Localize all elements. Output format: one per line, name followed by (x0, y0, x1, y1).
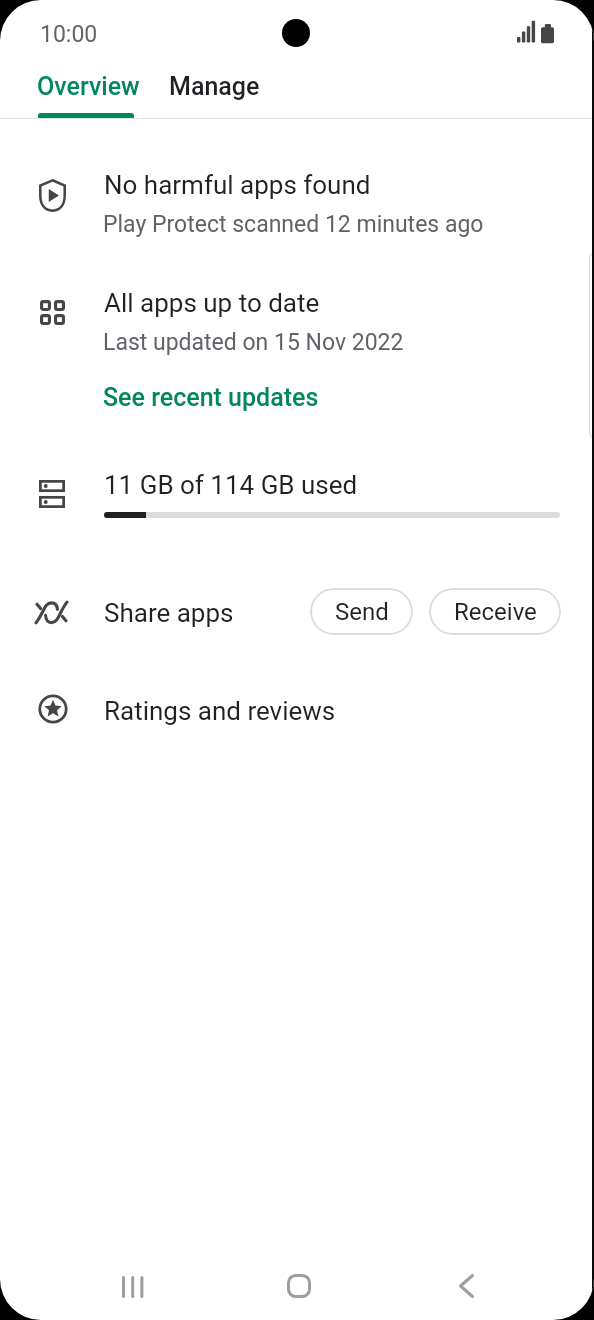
button[interactable]: Ratings and reviews (0, 680, 594, 740)
staticText: Last updated on 15 Nov 2022 (103, 329, 404, 356)
button[interactable]: Manage (159, 60, 269, 112)
staticText: Share apps (104, 598, 234, 628)
other: Play Protect (39, 179, 66, 212)
other: Share apps (35, 601, 68, 624)
staticText: 11 GB of 114 GB used (104, 470, 358, 500)
staticText: 10:00 (40, 21, 98, 48)
button[interactable]: Recent apps (93, 1253, 173, 1320)
staticText: No harmful apps found (104, 170, 371, 200)
button[interactable]: 11 GB of 114 GB used (0, 458, 594, 530)
button[interactable]: Home (259, 1253, 339, 1320)
staticText: Overview (37, 72, 140, 101)
button[interactable]: Send (310, 588, 413, 635)
button[interactable]: Back (426, 1253, 506, 1320)
button[interactable]: Receive (429, 588, 561, 635)
button[interactable]: No harmful apps found (0, 160, 594, 240)
other: Storage (39, 480, 65, 508)
other: Apps (40, 300, 65, 325)
staticText: Play Protect scanned 12 minutes ago (103, 211, 484, 238)
button[interactable]: See recent updates (92, 373, 330, 421)
staticText: All apps up to date (104, 288, 320, 318)
other: Ratings and reviews (38, 694, 68, 724)
staticText: Receive (454, 598, 537, 626)
button[interactable]: Overview (26, 60, 150, 112)
button[interactable]: All apps up to date (0, 278, 594, 356)
staticText: Manage (169, 72, 260, 101)
staticText: See recent updates (103, 383, 319, 412)
staticText: Send (335, 598, 389, 626)
staticText: Ratings and reviews (104, 696, 336, 726)
button[interactable] (0, 580, 594, 642)
